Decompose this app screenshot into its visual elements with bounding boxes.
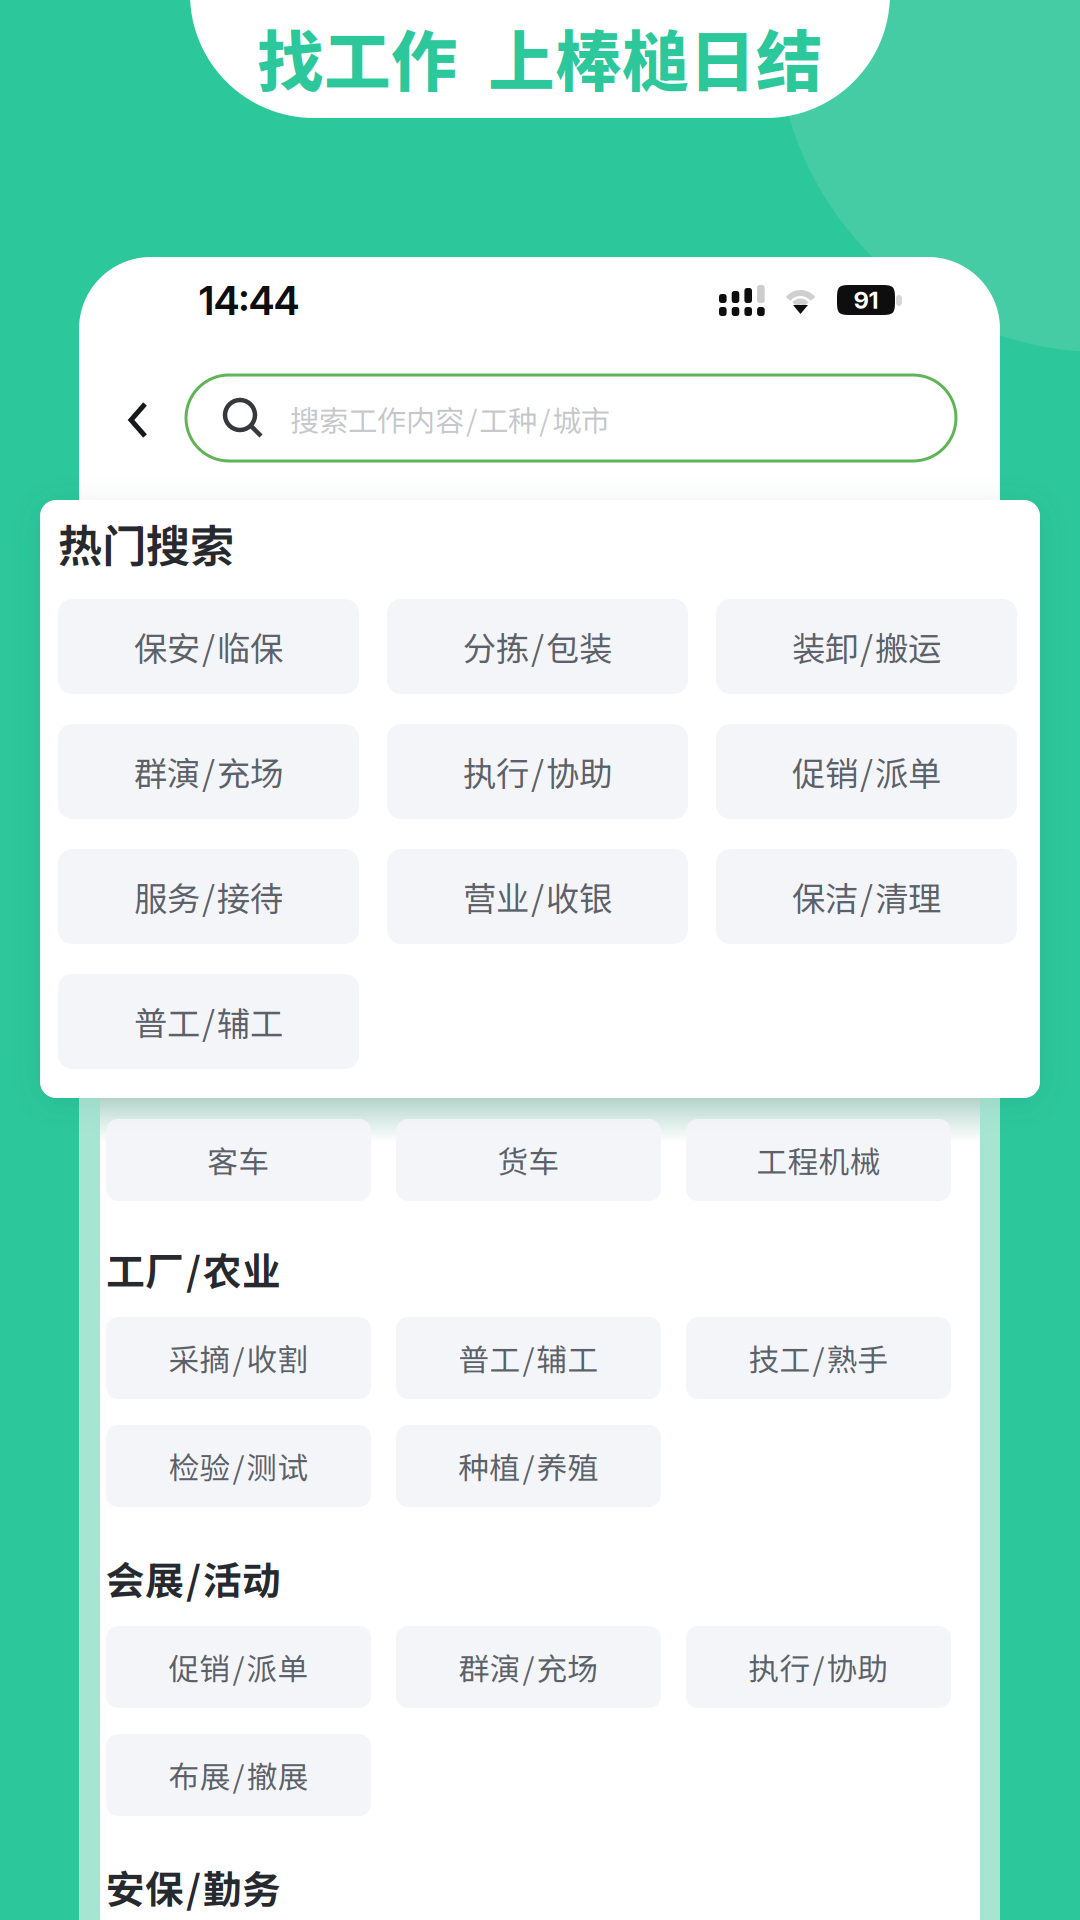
staticText: 91 [853, 285, 878, 314]
button[interactable]: 搜索工作内容/工种/城市 [186, 375, 956, 461]
staticText: 热门搜索 [58, 511, 234, 575]
button[interactable]: Back [105, 386, 171, 454]
button[interactable]: 检验/测试 [106, 1425, 371, 1507]
staticText: 会展 / 活动 [106, 1550, 281, 1606]
staticText: 分拣 / 包装 [463, 622, 612, 671]
button[interactable]: 种植/养殖 [396, 1425, 661, 1507]
staticText: 普工 / 辅工 [458, 1336, 598, 1380]
button[interactable]: 普工/辅工 [396, 1317, 661, 1399]
button[interactable]: 采摘/收割 [106, 1317, 371, 1399]
staticText: 工厂 / 农业 [106, 1241, 281, 1297]
staticText: 执行 / 协助 [463, 747, 612, 796]
button[interactable]: 工程机械 [686, 1119, 951, 1201]
button[interactable]: 货车 [396, 1119, 661, 1201]
button[interactable]: 保洁/清理 [716, 849, 1017, 944]
button[interactable]: 群演/充场 [58, 724, 359, 819]
staticText: 执行 / 协助 [748, 1645, 888, 1689]
staticText: 保安 / 临保 [134, 622, 283, 671]
staticText: 搜索工作内容 / 工种 / 城市 [290, 398, 610, 440]
button[interactable]: 营业/收银 [387, 849, 688, 944]
staticText: 工程机械 [756, 1138, 880, 1182]
staticText: 客车 [207, 1138, 269, 1182]
staticText: 找工作 上棒槌日结 [257, 9, 823, 105]
staticText: 促销 / 派单 [792, 747, 941, 796]
button[interactable]: 装卸/搬运 [716, 599, 1017, 694]
staticText: 检验 / 测试 [168, 1444, 308, 1488]
staticText: 服务 / 接待 [134, 872, 283, 921]
button[interactable]: 执行/协助 [387, 724, 688, 819]
button[interactable]: 服务/接待 [58, 849, 359, 944]
button[interactable]: 促销/派单 [716, 724, 1017, 819]
button[interactable]: 群演/充场 [396, 1626, 661, 1708]
staticText: 群演 / 充场 [458, 1645, 598, 1689]
staticText: 种植 / 养殖 [458, 1444, 598, 1488]
button[interactable]: 促销/派单 [106, 1626, 371, 1708]
button[interactable]: 技工/熟手 [686, 1317, 951, 1399]
button[interactable]: 执行/协助 [686, 1626, 951, 1708]
staticText: 群演 / 充场 [134, 747, 283, 796]
staticText: 采摘 / 收割 [168, 1336, 308, 1380]
staticText: 普工 / 辅工 [134, 997, 283, 1046]
staticText: 装卸 / 搬运 [792, 622, 941, 671]
button[interactable]: 分拣/包装 [387, 599, 688, 694]
staticText: 营业 / 收银 [463, 872, 612, 921]
staticText: 14:44 [199, 278, 299, 324]
button[interactable]: 布展/撤展 [106, 1734, 371, 1816]
staticText: 货车 [497, 1138, 559, 1182]
staticText: 保洁 / 清理 [792, 872, 941, 921]
button[interactable]: 普工/辅工 [58, 974, 359, 1069]
staticText: 布展 / 撤展 [168, 1753, 308, 1797]
staticText: 技工 / 熟手 [748, 1336, 888, 1380]
staticText: 促销 / 派单 [168, 1645, 308, 1689]
button[interactable]: 客车 [106, 1119, 371, 1201]
button[interactable]: 保安/临保 [58, 599, 359, 694]
staticText: 安保 / 勤务 [106, 1859, 281, 1915]
